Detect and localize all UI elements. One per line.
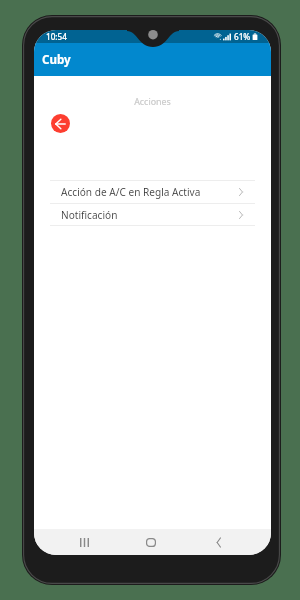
staticText: 61%	[234, 31, 251, 42]
button[interactable]: Notificación	[34, 203, 271, 226]
button[interactable]: Home	[139, 531, 163, 553]
staticText: Cuby	[42, 52, 71, 68]
button[interactable]: Recent apps	[72, 531, 96, 553]
button[interactable]: Acción de A/C en Regla Activa	[34, 180, 271, 203]
button[interactable]: Back	[51, 114, 70, 133]
staticText: Acciones	[34, 95, 271, 107]
button[interactable]: Back	[206, 531, 230, 553]
staticText: Notificación	[61, 208, 118, 222]
staticText: 10:54	[46, 31, 67, 42]
staticText: Acción de A/C en Regla Activa	[61, 185, 201, 199]
